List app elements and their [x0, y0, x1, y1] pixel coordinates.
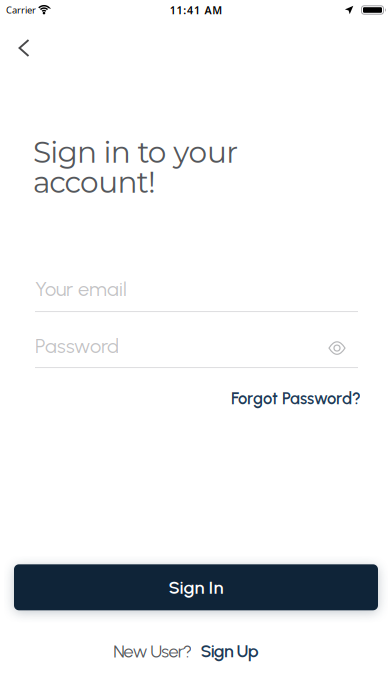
staticText: New User? — [113, 640, 192, 662]
staticText: account! — [33, 164, 156, 200]
staticText: 11:41 AM — [170, 3, 222, 17]
staticText: Your email — [35, 277, 127, 301]
staticText: Sign Up — [200, 640, 259, 662]
staticText: Forgot Password? — [231, 389, 361, 408]
staticText: Carrier — [6, 4, 36, 16]
staticText: Sign In — [168, 576, 223, 598]
button[interactable]: Sign Up — [200, 640, 259, 662]
button[interactable]: Sign In — [14, 564, 378, 610]
button[interactable]: Forgot Password? — [231, 389, 361, 408]
button[interactable]: Back — [2, 28, 46, 68]
staticText: Sign in to your — [33, 134, 238, 170]
button[interactable]: Show password — [329, 340, 358, 352]
staticText: Password — [35, 334, 119, 358]
